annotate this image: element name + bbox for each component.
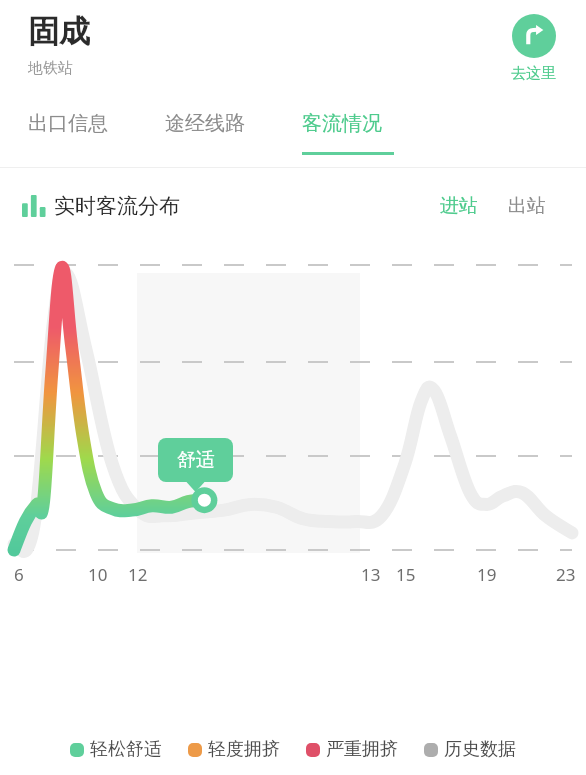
staticText: 15 [396,563,416,586]
staticText: 12 [128,563,148,586]
staticText: 客流情况 [302,111,382,136]
staticText: 13 [361,563,381,586]
staticText: 23 [556,563,576,586]
staticText: 出站 [508,194,546,218]
staticText: 19 [477,563,497,586]
staticText: 严重拥挤 [326,738,398,761]
button[interactable]: 去这里 导航 [507,10,560,87]
staticText: 舒适 [177,448,215,472]
button[interactable]: 轻松舒适 [68,736,164,763]
staticText: 地铁站 [28,59,73,78]
staticText: 去这里 [511,64,556,83]
staticText: 轻松舒适 [90,738,162,761]
staticText: 进站 [440,194,478,218]
staticText: 出口信息 [28,111,108,136]
button[interactable]: 出站 [504,190,550,222]
button[interactable]: 历史数据 [422,736,518,763]
staticText: 途经线路 [165,111,245,136]
staticText: 实时客流分布 [54,193,180,219]
staticText: 10 [88,563,108,586]
button[interactable]: 出口信息 [28,105,108,158]
button[interactable]: 客流情况 [302,105,394,161]
staticText: 6 [14,563,24,586]
button[interactable]: 严重拥挤 [304,736,400,763]
staticText: 历史数据 [444,738,516,761]
button[interactable]: 轻度拥挤 [186,736,282,763]
staticText: 固成 [28,12,90,51]
button[interactable]: 进站 [436,190,482,222]
staticText: 轻度拥挤 [208,738,280,761]
button[interactable]: 途经线路 [165,105,245,158]
